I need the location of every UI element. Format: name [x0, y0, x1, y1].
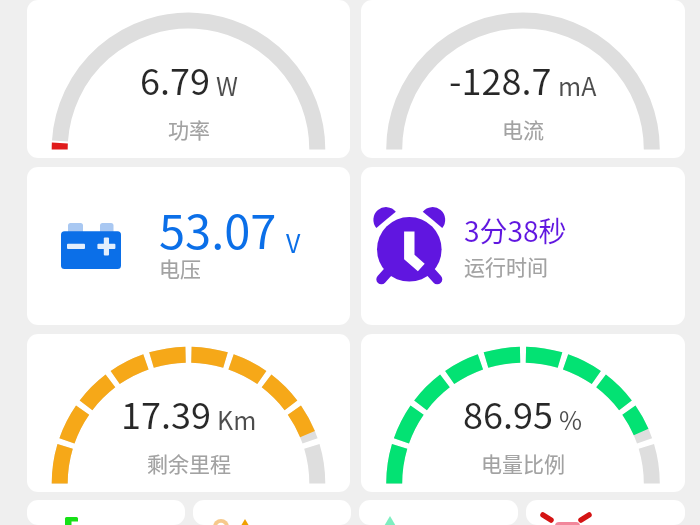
button[interactable]: -128.7 [361, 0, 685, 158]
staticText: 电流 [502, 114, 544, 144]
button[interactable]: 53.07 [27, 167, 350, 325]
button[interactable]: Charging state [27, 500, 185, 525]
staticText: 功率 [168, 114, 210, 144]
staticText: 6.79 [140, 53, 210, 105]
staticText: mA [558, 67, 597, 103]
button[interactable]: 86.95 [361, 334, 685, 492]
button[interactable]: Warnings [193, 500, 351, 525]
staticText: Km [217, 401, 257, 437]
staticText: % [559, 401, 583, 437]
staticText: 17.39 [121, 387, 211, 439]
button[interactable]: 3分38秒 [361, 167, 685, 325]
staticText: 剩余里程 [147, 448, 231, 478]
button[interactable]: 17.39 [27, 334, 350, 492]
staticText: V [286, 224, 301, 260]
button[interactable]: Drive mode [359, 500, 518, 525]
staticText: W [216, 67, 238, 103]
staticText: 86.95 [463, 387, 553, 439]
staticText: 电量比例 [481, 448, 565, 478]
staticText: 运行时间 [464, 251, 548, 281]
staticText: 53.07 [159, 194, 277, 262]
staticText: 电压 [159, 253, 201, 283]
staticText: 3分38秒 [464, 210, 567, 251]
staticText: -128.7 [449, 53, 552, 105]
button[interactable]: Brake alert [526, 500, 685, 525]
button[interactable]: 6.79 [27, 0, 350, 158]
